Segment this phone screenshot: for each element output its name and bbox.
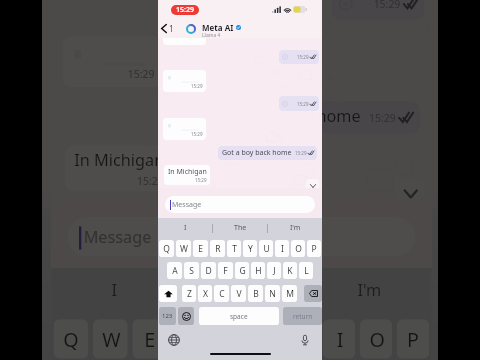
button[interactable]: R (172, 319, 207, 359)
staticText: In Michigan (168, 167, 207, 177)
staticText: S (189, 265, 194, 277)
button[interactable]: P (307, 240, 321, 257)
staticText: 123 (162, 312, 173, 320)
staticText: A (172, 265, 178, 277)
button[interactable]: S (184, 262, 199, 279)
button[interactable]: M (282, 285, 297, 302)
button[interactable]: 15:29 (163, 118, 206, 140)
staticText: 15:29 (297, 101, 309, 107)
button[interactable]: E (132, 319, 167, 359)
staticText: 15:29 (374, 0, 401, 11)
staticText: Message (172, 200, 202, 210)
button[interactable]: P (397, 319, 429, 359)
button[interactable]: Emoji (178, 307, 194, 325)
button[interactable]: I'm (306, 268, 432, 315)
staticText: 15:29 (176, 5, 194, 15)
staticText: U (295, 326, 311, 354)
button[interactable]: G (235, 262, 249, 279)
button[interactable]: I (323, 319, 355, 359)
button[interactable]: A (167, 262, 182, 279)
button[interactable]: W (93, 319, 128, 359)
button[interactable]: I'm (268, 218, 322, 238)
staticText: D (205, 265, 212, 277)
button[interactable]: U (285, 319, 318, 359)
staticText: I (184, 223, 187, 233)
button[interactable]: 123 (159, 307, 176, 325)
staticText: 1 (169, 23, 174, 34)
button[interactable]: K (283, 262, 297, 279)
button[interactable]: V (231, 285, 246, 302)
button[interactable]: T (227, 240, 241, 257)
button[interactable]: Z (182, 285, 196, 302)
staticText: T (232, 243, 237, 255)
button[interactable]: In Michigan (164, 165, 210, 185)
button[interactable]: The (179, 268, 304, 315)
staticText: X (203, 288, 208, 300)
button[interactable]: Backspace (304, 285, 322, 302)
button[interactable]: I (158, 218, 212, 238)
staticText: 15:29 (191, 131, 203, 137)
button[interactable]: Message (165, 196, 315, 213)
button[interactable]: I (275, 240, 289, 257)
button[interactable]: I (51, 268, 176, 315)
button[interactable]: W (176, 240, 191, 257)
button[interactable]: 15:29 (279, 96, 319, 111)
button[interactable]: The (213, 218, 267, 238)
staticText: R (215, 243, 221, 255)
button[interactable]: 15:29 (332, 0, 425, 20)
button[interactable]: 15:29 (163, 70, 206, 92)
button[interactable]: Got a boy back home (190, 101, 420, 134)
button[interactable]: H (251, 262, 265, 279)
staticText: I'm (290, 223, 301, 233)
button[interactable]: Scroll to bottom (394, 178, 425, 208)
staticText: The (234, 223, 247, 233)
button[interactable]: 15:29 (63, 36, 163, 87)
button[interactable]: Scroll to bottom (306, 179, 319, 192)
staticText: 15:29 (128, 66, 155, 80)
staticText: 15:29 (369, 110, 397, 124)
button[interactable]: Back (160, 22, 175, 35)
button[interactable]: T (211, 319, 244, 359)
button[interactable]: 15:29 (279, 50, 319, 64)
staticText: C (219, 288, 225, 300)
button[interactable]: D (201, 262, 216, 279)
button[interactable]: F (218, 262, 233, 279)
staticText: L (304, 265, 309, 277)
button[interactable]: C (214, 285, 229, 302)
button[interactable]: Dictate (298, 333, 312, 347)
staticText: P (311, 243, 317, 255)
button[interactable]: B (248, 285, 263, 302)
button[interactable]: Message (67, 217, 415, 256)
button[interactable]: Y (243, 240, 257, 257)
staticText: J (273, 265, 276, 277)
button[interactable]: Change keyboard (167, 333, 181, 347)
button[interactable]: E (193, 240, 208, 257)
button[interactable]: U (259, 240, 273, 257)
staticText: I (336, 326, 343, 354)
button[interactable]: X (198, 285, 212, 302)
button[interactable]: Got a boy back home (218, 146, 317, 160)
button[interactable]: L (299, 262, 313, 279)
staticText: 15:29 (297, 54, 309, 60)
button[interactable]: R (210, 240, 225, 257)
button[interactable]: space (199, 307, 279, 325)
button[interactable]: Q (159, 240, 174, 257)
button[interactable]: N (265, 285, 280, 302)
button[interactable]: return (283, 307, 322, 325)
button[interactable]: J (267, 262, 281, 279)
staticText: Y (260, 326, 272, 354)
button[interactable]: O (291, 240, 305, 257)
staticText: W (180, 243, 188, 255)
button[interactable]: Shift (159, 285, 177, 302)
button[interactable]: In Michigan (65, 145, 172, 192)
staticText: F (223, 265, 228, 277)
staticText: E (198, 243, 203, 255)
staticText: 15:29 (195, 177, 207, 183)
button[interactable]: Q (53, 319, 88, 359)
staticText: return (293, 312, 313, 321)
button[interactable]: Y (248, 319, 281, 359)
staticText: N (269, 288, 276, 300)
staticText: O (369, 326, 385, 354)
button[interactable]: O (360, 319, 392, 359)
